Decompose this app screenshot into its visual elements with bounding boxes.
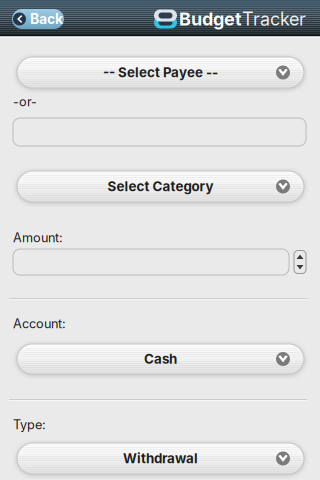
button[interactable]: Step amount xyxy=(294,250,306,273)
staticText: Cash xyxy=(144,351,177,367)
staticText: Budget xyxy=(179,8,242,30)
button[interactable]: Back xyxy=(12,9,64,29)
staticText: Withdrawal xyxy=(123,450,198,466)
button[interactable]: Withdrawal xyxy=(17,443,304,474)
staticText: Type: xyxy=(13,417,46,432)
button[interactable]: Cash xyxy=(17,344,304,374)
staticText: Amount: xyxy=(13,230,63,245)
staticText: Select Category xyxy=(107,178,213,194)
staticText: -- Select Payee -- xyxy=(103,64,218,80)
button[interactable]: Select Category xyxy=(17,171,304,202)
staticText: Back xyxy=(30,10,63,27)
staticText: Account: xyxy=(13,316,66,331)
button[interactable]: -- Select Payee -- xyxy=(17,57,304,88)
staticText: Tracker xyxy=(242,8,306,30)
staticText: -or- xyxy=(13,94,37,109)
